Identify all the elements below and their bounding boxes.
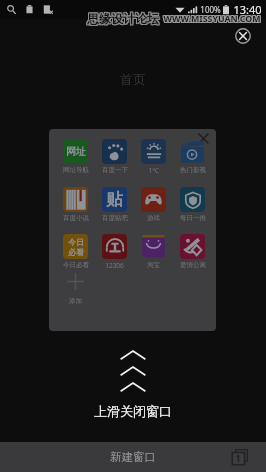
- staticText: WWW.MISSYUAN.COM: [162, 14, 260, 26]
- button[interactable]: Close panel: [197, 132, 210, 145]
- staticText: 1℃: [148, 166, 159, 175]
- staticText: 13:40: [233, 2, 262, 17]
- button[interactable]: 游戏: [134, 187, 173, 222]
- staticText: 思缘设计论坛: [86, 12, 158, 27]
- staticText: 思缘设计论坛: [87, 10, 159, 25]
- button[interactable]: Tabs: [229, 446, 251, 468]
- button[interactable]: 今日 必看: [56, 234, 95, 269]
- staticText: 上滑关闭窗口: [94, 403, 172, 419]
- staticText: 百度一下: [102, 166, 128, 174]
- staticText: 每日一推: [180, 214, 206, 222]
- staticText: 网址导航: [63, 166, 89, 174]
- staticText: 思缘设计论坛: [86, 11, 158, 26]
- staticText: 今日必看: [63, 261, 89, 269]
- button[interactable]: 爱情公寓: [173, 234, 212, 269]
- staticText: 100%: [200, 4, 221, 15]
- staticText: 热门影视: [180, 166, 206, 174]
- staticText: 百度小说: [63, 214, 89, 222]
- button[interactable]: 百度一下: [95, 139, 134, 174]
- button[interactable]: 网址: [56, 139, 95, 174]
- staticText: 网址: [66, 145, 86, 158]
- staticText: 思缘设计论坛: [87, 12, 159, 27]
- staticText: WWW.MISSYUAN.COM: [163, 12, 261, 24]
- button[interactable]: 每日一推: [173, 187, 212, 222]
- button[interactable]: Add shortcut: [56, 269, 95, 305]
- staticText: 新建窗口: [110, 450, 156, 464]
- staticText: 百度贴吧: [102, 214, 128, 222]
- staticText: 12306: [105, 261, 124, 270]
- staticText: 爱情公寓: [180, 261, 206, 269]
- staticText: WWW.MISSYUAN.COM: [162, 13, 260, 25]
- staticText: 思缘设计论坛: [88, 11, 160, 26]
- button[interactable]: 百度小说: [56, 187, 95, 222]
- staticText: WWW.MISSYUAN.COM: [164, 13, 262, 25]
- button[interactable]: 新建窗口: [88, 444, 178, 470]
- button[interactable]: 1℃: [134, 139, 173, 175]
- staticText: 贴: [106, 189, 123, 210]
- staticText: 思缘设计论坛: [87, 11, 159, 26]
- staticText: 首页: [120, 71, 146, 87]
- staticText: 游戏: [147, 214, 160, 222]
- staticText: WWW.MISSYUAN.COM: [163, 13, 261, 25]
- staticText: 淘宝: [147, 261, 160, 269]
- button[interactable]: Close: [231, 24, 254, 47]
- staticText: WWW.MISSYUAN.COM: [163, 14, 261, 26]
- staticText: 思缘设计论坛: [88, 10, 160, 25]
- staticText: WWW.MISSYUAN.COM: [164, 14, 262, 26]
- staticText: 思缘设计论坛: [86, 10, 158, 25]
- staticText: 添加: [69, 297, 82, 305]
- button[interactable]: 淘宝: [134, 234, 173, 269]
- button[interactable]: 热门影视: [173, 139, 212, 174]
- staticText: WWW.MISSYUAN.COM: [164, 12, 262, 24]
- staticText: WWW.MISSYUAN.COM: [162, 12, 260, 24]
- button[interactable]: 12306: [95, 234, 134, 270]
- button[interactable]: 贴: [95, 187, 134, 222]
- staticText: 今日 必看: [68, 237, 84, 257]
- staticText: 思缘设计论坛: [88, 12, 160, 27]
